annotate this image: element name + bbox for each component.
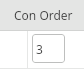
staticText: Con Order — [14, 7, 73, 23]
staticText: 3 — [36, 41, 43, 57]
button[interactable]: Con Order value — [32, 34, 65, 63]
button[interactable]: Con Order — [0, 0, 84, 30]
